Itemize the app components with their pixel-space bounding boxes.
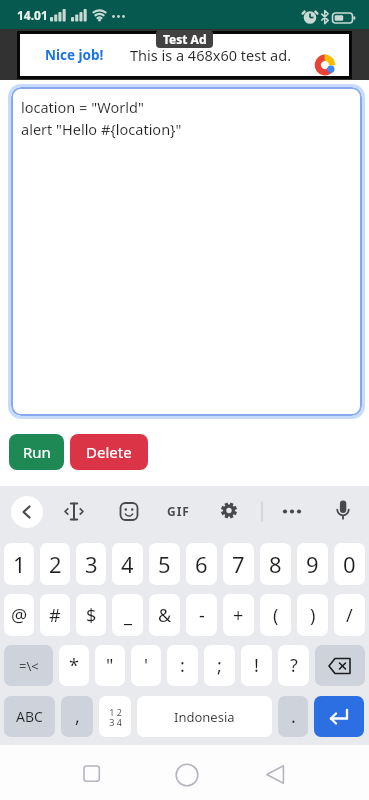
button[interactable]: Indonesia	[137, 696, 272, 737]
button[interactable]: 9	[297, 543, 328, 585]
staticText: +	[233, 603, 244, 628]
staticText: ,	[75, 704, 80, 729]
staticText: /	[346, 603, 353, 628]
staticText: 7	[232, 549, 245, 579]
button[interactable]: 4	[112, 543, 143, 585]
button[interactable]: @	[4, 594, 34, 636]
staticText: 5	[158, 549, 171, 579]
staticText: ?	[290, 653, 298, 678]
staticText: Nice job!	[45, 46, 104, 64]
button[interactable]	[259, 758, 291, 790]
staticText: location = "World" alert "Hello #{locati…	[21, 97, 182, 139]
staticText: 2	[49, 549, 62, 579]
staticText: &	[158, 603, 172, 628]
staticText: 8	[269, 549, 282, 579]
button[interactable]: /	[334, 594, 365, 636]
staticText: _	[124, 603, 132, 628]
button[interactable]: &	[149, 594, 180, 636]
button[interactable]	[11, 496, 43, 528]
staticText: Test Ad	[163, 31, 207, 47]
button[interactable]: "	[95, 645, 125, 686]
button[interactable]: !	[241, 645, 272, 686]
button[interactable]: +	[223, 594, 254, 636]
button[interactable]: Nice job!	[20, 34, 349, 76]
staticText: .	[291, 704, 296, 729]
button[interactable]: $	[76, 594, 106, 636]
button[interactable]: ABC	[4, 696, 55, 737]
button[interactable]: 2	[40, 543, 70, 585]
staticText: 4	[121, 549, 134, 579]
staticText: !	[254, 653, 259, 678]
staticText: 1 2 3 4	[109, 706, 122, 728]
staticText: Indonesia	[174, 708, 235, 726]
button[interactable]: 8	[260, 543, 291, 585]
button[interactable]: Delete	[70, 434, 148, 470]
button[interactable]	[171, 758, 203, 790]
button[interactable]: -	[186, 594, 217, 636]
staticText: 6	[195, 549, 208, 579]
button[interactable]: (	[260, 594, 291, 636]
button[interactable]: Run	[9, 434, 64, 470]
staticText: ;	[217, 653, 222, 678]
button[interactable]: ,	[61, 696, 93, 737]
button[interactable]: ?	[278, 645, 309, 686]
staticText: This is a 468x60 test ad.	[130, 45, 292, 65]
staticText: 14.01	[17, 7, 48, 23]
button[interactable]: =\<	[4, 645, 53, 686]
button[interactable]: GIF	[167, 503, 190, 519]
button[interactable]: 3	[76, 543, 106, 585]
staticText: 3	[85, 549, 98, 579]
button[interactable]: _	[112, 594, 143, 636]
button[interactable]: 7	[223, 543, 254, 585]
staticText: 1	[13, 549, 26, 579]
staticText: (	[273, 603, 279, 628]
button[interactable]: 0	[334, 543, 365, 585]
button[interactable]: 1 2 3 4	[99, 696, 131, 737]
staticText: "	[106, 653, 114, 678]
staticText: =\<	[19, 657, 39, 675]
staticText: @	[11, 603, 28, 628]
button[interactable]: 1	[4, 543, 34, 585]
staticText: Run	[23, 442, 51, 462]
button[interactable]: #	[40, 594, 70, 636]
button[interactable]: :	[167, 645, 198, 686]
staticText: )	[310, 603, 316, 628]
button[interactable]: *	[59, 645, 89, 686]
button[interactable]	[315, 645, 365, 686]
staticText: 0	[343, 549, 356, 579]
staticText: #	[49, 603, 61, 628]
button[interactable]	[314, 696, 364, 737]
button[interactable]: 5	[149, 543, 180, 585]
button[interactable]: 6	[186, 543, 217, 585]
staticText: $	[86, 603, 97, 628]
button[interactable]	[76, 758, 108, 790]
button[interactable]: )	[297, 594, 328, 636]
staticText: 9	[306, 549, 319, 579]
button[interactable]: '	[131, 645, 161, 686]
staticText: -	[199, 603, 205, 628]
staticText: '	[144, 653, 149, 678]
staticText: ABC	[16, 707, 43, 726]
button[interactable]: ;	[204, 645, 235, 686]
button[interactable]: location = "World" alert "Hello #{locati…	[11, 87, 362, 416]
staticText: Delete	[86, 442, 132, 462]
staticText: :	[180, 653, 185, 678]
staticText: *	[69, 653, 79, 678]
button[interactable]: .	[278, 696, 308, 737]
